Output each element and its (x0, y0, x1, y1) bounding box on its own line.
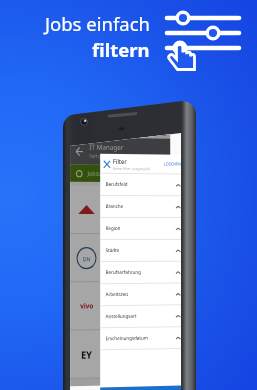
staticText: Erscheinungsdatum (106, 335, 149, 342)
button[interactable]: Berufserfahrung (100, 262, 181, 283)
button[interactable]: vivo (70, 282, 170, 330)
button[interactable]: DN (70, 234, 170, 281)
button[interactable]: Berufsfeld (100, 174, 181, 195)
button[interactable]: Schließen (100, 154, 181, 174)
staticText: München (103, 215, 124, 222)
staticText: Jobsuche merken (87, 170, 132, 178)
button[interactable]: Städte (100, 240, 181, 261)
staticText: Seit gestern (89, 153, 116, 160)
staticText: Jobs einfach (45, 11, 150, 36)
staticText: vivo (80, 301, 94, 311)
staticText: DN (83, 255, 91, 262)
staticText: Senior Consultant (103, 293, 145, 300)
staticText: IT Manager (89, 143, 124, 153)
staticText: Anstellungsart (106, 313, 137, 320)
staticText: Städte (106, 247, 120, 254)
staticText: Branche (106, 203, 124, 210)
staticText: Keine Filter ausgewählt (113, 166, 150, 171)
button[interactable]: FILTER ANWENDEN (100, 385, 181, 390)
staticText: Berufsfeld (106, 181, 128, 188)
staticText: Firma GmbH (103, 302, 130, 309)
button[interactable]: Region (100, 218, 181, 239)
button[interactable]: EY (70, 329, 170, 378)
staticText: Firma GmbH (103, 206, 130, 213)
button[interactable]: Branche (100, 196, 181, 217)
staticText: Region (106, 225, 121, 232)
button[interactable]: Erscheinungsdatum (100, 327, 181, 349)
staticText: LÖSCHEN (164, 161, 181, 167)
staticText: filtern (92, 37, 150, 62)
button[interactable]: Anstellungsart (100, 305, 181, 327)
button[interactable]: Schließen (100, 157, 113, 171)
staticText: München (103, 311, 124, 318)
staticText: Arbeitszeit (106, 291, 128, 298)
button[interactable]: Senior Consultant (70, 186, 170, 233)
button[interactable]: Arbeitszeit (100, 283, 181, 305)
staticText: EY (81, 347, 92, 362)
other: Filter (163, 5, 245, 77)
staticText: Senior Consultant (103, 245, 145, 252)
staticText: Berufserfahrung (106, 269, 142, 276)
staticText: 12:00 (154, 133, 167, 137)
staticText: Filter (113, 157, 127, 166)
